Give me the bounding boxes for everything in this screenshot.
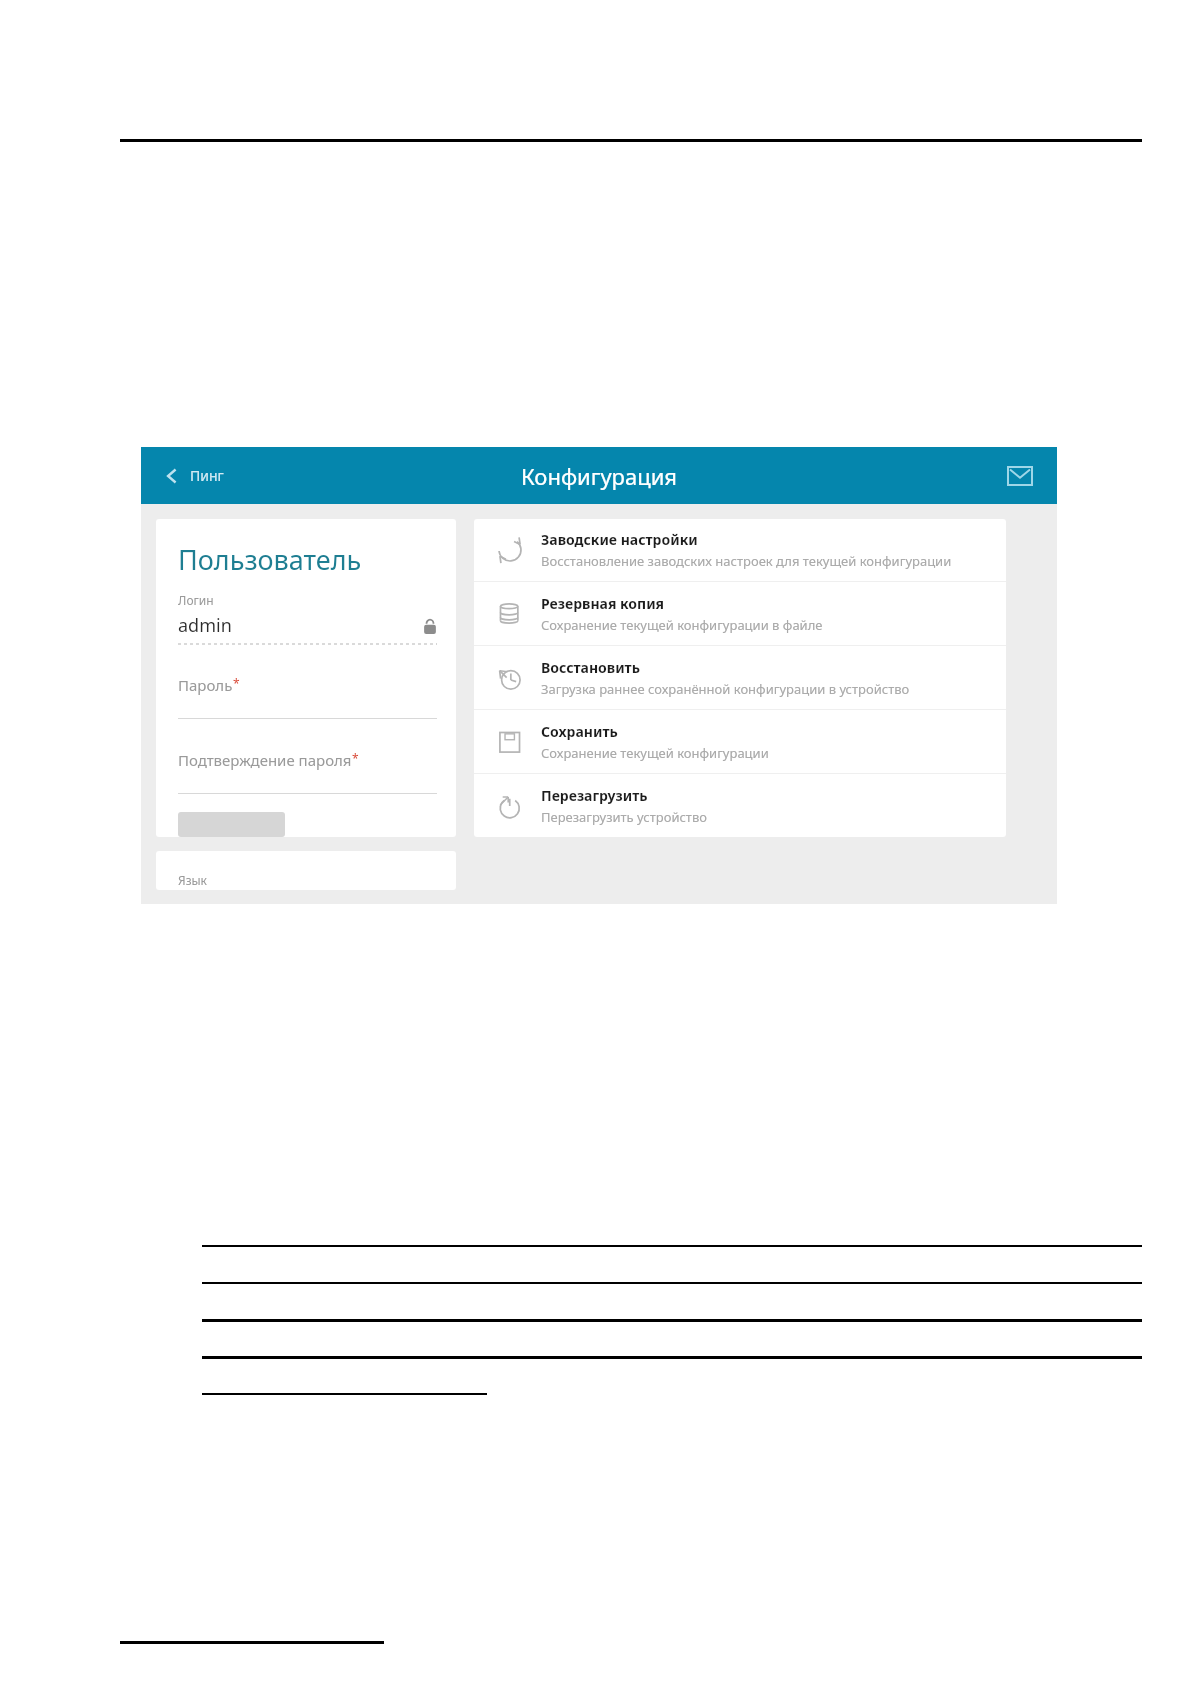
staticText: Подтверждение пароля (178, 750, 352, 770)
staticText: Заводские настройки (541, 530, 698, 549)
button[interactable]: Резервная копия (474, 582, 1006, 645)
button[interactable]: Перезагрузить (474, 774, 1006, 837)
button[interactable]: Пинг (157, 460, 230, 491)
staticText: * (233, 675, 240, 691)
staticText: Сохранение текущей конфигурации (541, 744, 769, 762)
staticText: Сохранить (541, 722, 618, 741)
staticText: Конфигурация (521, 461, 678, 491)
staticText: Загрузка раннее сохранённой конфигурации… (541, 680, 910, 698)
button[interactable]: Заводские настройки (474, 519, 1006, 581)
staticText: Сохранение текущей конфигурации в файле (541, 616, 823, 634)
staticText: Пароль (178, 675, 233, 695)
button[interactable]: Почта (1003, 459, 1037, 493)
button[interactable]: Восстановить (474, 646, 1006, 709)
staticText: Логин (178, 592, 214, 608)
button[interactable]: Сохранить (474, 710, 1006, 773)
staticText: Восстановить (541, 658, 640, 677)
button[interactable]: Язык (156, 851, 456, 890)
staticText: Перезагрузить устройство (541, 808, 707, 826)
staticText: Восстановление заводских настроек для те… (541, 552, 952, 570)
staticText: admin (178, 613, 423, 638)
staticText: * (352, 750, 359, 766)
staticText: Пользователь (178, 541, 362, 578)
staticText: Перезагрузить (541, 786, 648, 805)
staticText: Пинг (190, 466, 224, 485)
staticText: Язык (178, 872, 207, 888)
staticText: Резервная копия (541, 594, 665, 613)
